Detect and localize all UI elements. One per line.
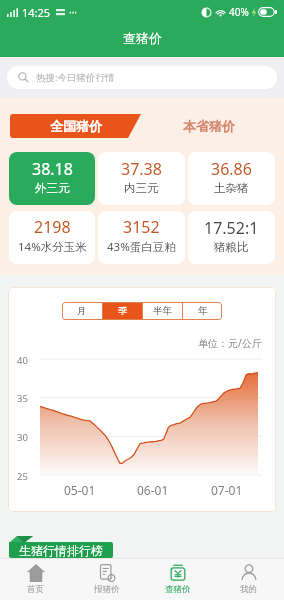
staticText: 06-01 [137, 482, 169, 498]
staticText: 月 [77, 305, 87, 317]
button[interactable]: 2198 [9, 211, 95, 264]
button[interactable]: 全国猪价 [10, 114, 141, 138]
staticText: 报猪价 [94, 584, 120, 595]
staticText: 17.52:1 [204, 217, 259, 239]
button[interactable]: 月 [62, 302, 102, 320]
button[interactable]: 17.52:1 [188, 211, 275, 264]
staticText: 半年 [153, 305, 172, 317]
button[interactable]: 生猪行情排行榜 [9, 542, 113, 558]
staticText: 内三元 [124, 181, 159, 195]
staticText: 我的 [240, 584, 257, 595]
staticText: 3152 [123, 216, 160, 238]
staticText: 本省猪价 [183, 118, 235, 134]
staticText: 07-01 [211, 482, 243, 498]
button[interactable]: 本省猪价 [141, 114, 284, 138]
button[interactable]: 3152 [98, 211, 185, 264]
button[interactable]: 报猪价 [71, 559, 142, 600]
staticText: 查猪价 [165, 584, 191, 595]
staticText: 生猪行情排行榜 [19, 543, 103, 558]
staticText: 年 [198, 305, 208, 317]
staticText: 14:25 [22, 5, 51, 20]
button[interactable]: 年 [183, 302, 222, 320]
staticText: 外三元 [35, 181, 70, 195]
staticText: 全国猪价 [50, 118, 102, 134]
staticText: 热搜:今日猪价行情 [36, 71, 115, 84]
button[interactable]: 38.18 [9, 152, 95, 205]
button[interactable]: 查猪价 [142, 559, 213, 600]
button[interactable]: 热搜:今日猪价行情 [7, 66, 277, 89]
staticText: 首页 [27, 584, 44, 595]
staticText: 40% [229, 5, 249, 19]
staticText: 30 [17, 431, 28, 444]
staticText: 38.18 [32, 158, 73, 180]
button[interactable]: 37.38 [98, 152, 185, 205]
staticText: 05-01 [64, 482, 96, 498]
staticText: 40 [17, 354, 28, 367]
button[interactable]: 我的 [213, 559, 284, 600]
staticText: 单位：元/公斤 [198, 336, 262, 350]
button[interactable]: 36.86 [188, 152, 275, 205]
staticText: 季 [118, 305, 128, 317]
staticText: 14%水分玉米 [18, 239, 87, 255]
staticText: 土杂猪 [214, 181, 249, 195]
staticText: 猪粮比 [214, 240, 249, 254]
button[interactable]: 半年 [143, 302, 182, 320]
staticText: 43%蛋白豆粕 [107, 239, 176, 255]
staticText: 37.38 [121, 158, 162, 180]
button[interactable]: 首页 [0, 559, 71, 600]
staticText: ··· [69, 5, 78, 19]
staticText: 36.86 [211, 158, 252, 180]
staticText: 35 [17, 392, 28, 405]
staticText: 查猪价 [123, 30, 162, 46]
staticText: 2198 [34, 216, 71, 238]
button[interactable]: 季 [103, 302, 142, 320]
staticText: 25 [17, 470, 28, 483]
